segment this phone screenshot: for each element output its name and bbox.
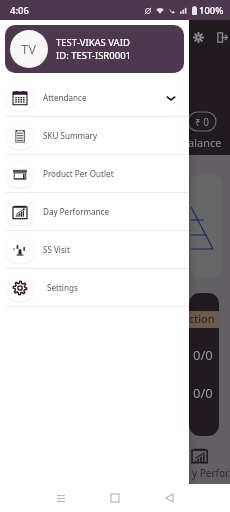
staticText: Settings [47, 282, 78, 293]
button[interactable]: SKU Summary [0, 117, 189, 154]
button[interactable]: TV [5, 25, 184, 73]
button[interactable]: Logout [214, 29, 230, 45]
staticText: y Perfor... [192, 466, 230, 480]
staticText: Attendance [43, 92, 87, 103]
staticText: 100% [199, 4, 224, 17]
staticText: SKU Summary [43, 130, 98, 141]
button[interactable]: Attendance [0, 79, 189, 116]
staticText: Day Performance [43, 206, 110, 217]
staticText: 0/0 [193, 384, 213, 402]
button[interactable]: SS Visit [0, 231, 189, 268]
staticText: ID: TEST-ISR0001 [56, 49, 131, 62]
button[interactable]: Recents [48, 485, 74, 511]
staticText: ₹ 0 [195, 115, 210, 129]
staticText: TEST-VIKAS VAID [56, 36, 130, 49]
button[interactable]: ₹ 0 [188, 112, 216, 131]
staticText: ctions [189, 311, 219, 328]
button[interactable]: Settings [190, 29, 206, 45]
button[interactable]: Settings [0, 269, 189, 306]
button[interactable]: Home [102, 485, 128, 511]
staticText: SS Visit [43, 244, 70, 255]
staticText: alance [188, 135, 222, 150]
staticText: Product Per Outlet [43, 168, 114, 179]
button[interactable]: Product Per Outlet [0, 155, 189, 192]
staticText: 4:06 [10, 4, 29, 17]
button[interactable]: Back [156, 485, 182, 511]
staticText: TV [21, 40, 37, 58]
staticText: 0/0 [193, 346, 213, 364]
button[interactable]: Day Performance [0, 193, 189, 230]
